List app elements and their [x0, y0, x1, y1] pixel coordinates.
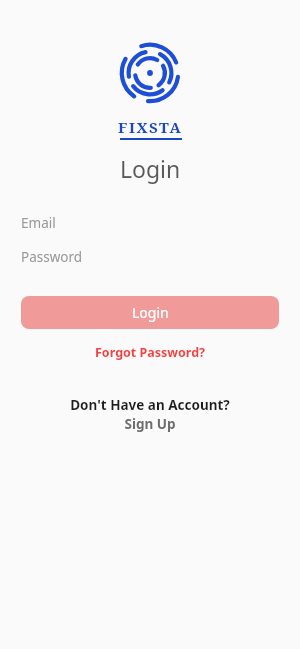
staticText: Login	[120, 153, 181, 184]
staticText: Login	[132, 303, 169, 322]
staticText: Forgot Password?	[95, 344, 206, 361]
staticText: FIXSTA	[118, 117, 183, 137]
button[interactable]: Forgot Password?	[87, 341, 214, 364]
button[interactable]: Password	[21, 244, 279, 270]
button[interactable]: Login	[21, 296, 279, 329]
button[interactable]: Email	[21, 210, 279, 236]
staticText: Don't Have an Account?	[70, 396, 230, 414]
button[interactable]: Don't Have an Account?	[60, 394, 240, 435]
staticText: Password	[21, 248, 83, 266]
other: Fixsta logo	[119, 42, 181, 104]
staticText: Sign Up	[124, 415, 176, 433]
staticText: Email	[21, 214, 56, 232]
